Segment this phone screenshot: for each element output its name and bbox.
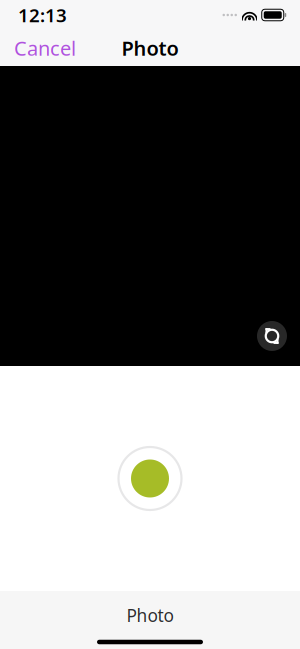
staticText: Cancel (14, 35, 76, 61)
staticText: Photo (121, 35, 178, 61)
button[interactable]: Cancel (0, 28, 90, 68)
staticText: Photo (126, 604, 173, 627)
button[interactable]: Photo (110, 599, 189, 632)
button[interactable]: Take Photo (115, 443, 185, 513)
button[interactable]: Switch Camera (255, 319, 289, 353)
staticText: 12:13 (18, 3, 67, 27)
